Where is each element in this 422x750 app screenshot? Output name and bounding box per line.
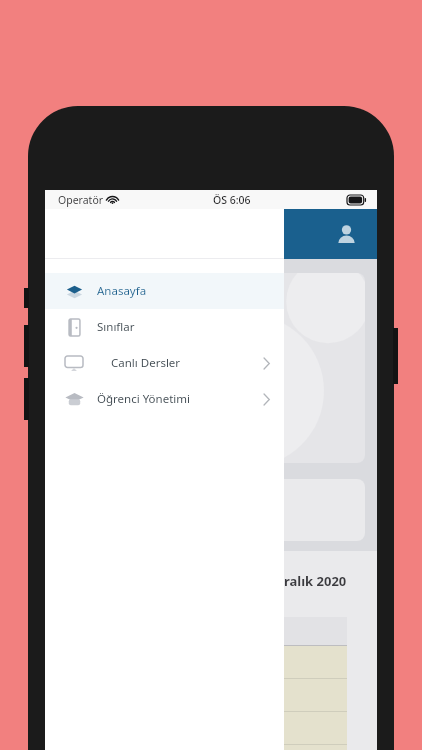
button[interactable]: Anasayfa — [45, 273, 284, 309]
staticText: Canlı Dersler — [111, 355, 181, 371]
staticText: Aralık 2020 — [275, 572, 347, 590]
button[interactable]: Canlı Dersler — [45, 345, 284, 381]
staticText: Anasayfa — [97, 283, 147, 299]
staticText: Öğrenci Yönetimi — [97, 391, 190, 407]
staticText: Operatör — [58, 193, 104, 207]
staticText: ÖS 6:06 — [213, 193, 251, 207]
button[interactable]: Sınıflar — [45, 309, 284, 345]
button[interactable]: Profile — [329, 217, 363, 251]
button[interactable]: Öğrenci Yönetimi — [45, 381, 284, 417]
staticText: Sınıflar — [97, 319, 135, 335]
